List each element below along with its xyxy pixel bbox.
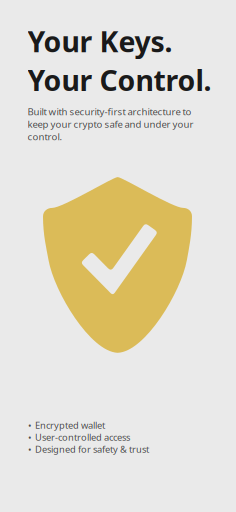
staticText: • <box>28 431 32 443</box>
staticText: • <box>28 443 32 455</box>
staticText: Designed for safety & trust <box>35 443 149 455</box>
staticText: User-controlled access <box>35 431 130 443</box>
staticText: Built with security-first architecture t… <box>27 105 193 143</box>
staticText: Encrypted wallet <box>35 419 105 431</box>
staticText: • <box>28 419 32 431</box>
staticText: Your Keys. Your Control. <box>27 22 211 99</box>
